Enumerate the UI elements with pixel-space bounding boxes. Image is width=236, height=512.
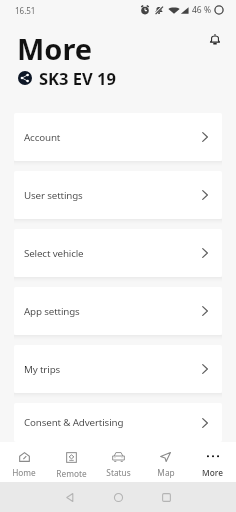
- staticText: User settings: [24, 189, 83, 202]
- button[interactable]: User settings: [14, 171, 222, 219]
- button[interactable]: More: [189, 448, 236, 482]
- staticText: Home: [12, 467, 36, 478]
- button[interactable]: Notifications: [203, 27, 227, 51]
- button[interactable]: Select vehicle: [14, 229, 222, 277]
- button[interactable]: Back: [58, 485, 82, 509]
- staticText: SK3 EV 19: [39, 67, 116, 89]
- staticText: More: [202, 467, 223, 478]
- button[interactable]: Recent apps: [154, 485, 178, 509]
- button[interactable]: My trips: [14, 345, 222, 393]
- staticText: 16.51: [15, 5, 36, 16]
- button[interactable]: Account: [14, 113, 222, 161]
- staticText: 46 %: [192, 4, 211, 16]
- button[interactable]: Consent & Advertising: [14, 403, 222, 442]
- button[interactable]: Remote: [48, 448, 95, 482]
- button[interactable]: Home: [106, 485, 130, 509]
- staticText: My trips: [24, 363, 61, 376]
- button[interactable]: Status: [95, 448, 142, 482]
- staticText: Status: [106, 467, 131, 478]
- staticText: Remote: [56, 468, 87, 479]
- button[interactable]: App settings: [14, 287, 222, 335]
- staticText: App settings: [24, 305, 80, 318]
- staticText: Map: [157, 467, 175, 478]
- button[interactable]: Home: [0, 448, 48, 482]
- staticText: Select vehicle: [24, 247, 84, 260]
- button[interactable]: Map: [142, 448, 189, 482]
- staticText: Consent & Advertising: [24, 416, 124, 429]
- staticText: More: [17, 29, 93, 67]
- staticText: Account: [24, 131, 61, 144]
